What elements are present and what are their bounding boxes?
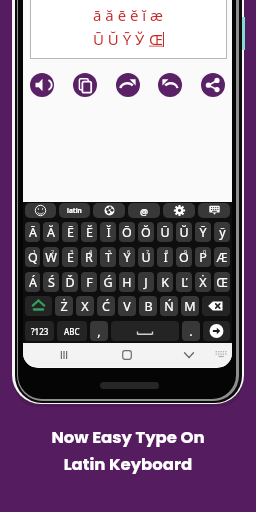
button[interactable]: E (62, 247, 78, 267)
button[interactable]: Ď (62, 272, 78, 292)
button[interactable]: Ŭ (176, 222, 192, 242)
button[interactable]: Speak (30, 73, 54, 97)
button[interactable]: Ĕ (81, 222, 97, 242)
button[interactable]: R (81, 247, 97, 267)
button[interactable]: Ŏ (138, 222, 154, 242)
staticText: @ (140, 205, 149, 217)
button[interactable]: Ū (157, 222, 173, 242)
staticText: ў (219, 224, 226, 241)
button[interactable]: Ō (119, 222, 135, 242)
staticText: 6 (127, 248, 131, 255)
staticText: 8 (165, 248, 169, 255)
button[interactable]: ABC (57, 321, 87, 341)
button[interactable]: Copy (73, 73, 97, 97)
button[interactable]: X (76, 296, 94, 316)
button[interactable]: K (157, 272, 173, 292)
button[interactable]: Ẋ (195, 272, 211, 292)
staticText: , (97, 323, 101, 340)
button[interactable]: latin (59, 203, 90, 218)
staticText: Ś (48, 274, 55, 291)
button[interactable]: J (138, 272, 154, 292)
button[interactable]: Redo (116, 73, 140, 97)
button[interactable]: B (139, 296, 157, 316)
staticText: E (67, 249, 74, 266)
staticText: Ō (122, 224, 132, 241)
button[interactable]: Ľ (176, 272, 192, 292)
staticText: Ǵ (103, 274, 113, 291)
button[interactable]: Keyboard option (93, 203, 125, 218)
button[interactable]: Ă (43, 222, 59, 242)
button[interactable]: Æ (214, 247, 230, 267)
button[interactable]: Enter (203, 321, 230, 341)
staticText: ā ă ē ĕ ĭ æ (93, 5, 164, 25)
staticText: Now Easy Type On (0, 426, 256, 449)
staticText: Ā (29, 224, 37, 241)
staticText: Æ (216, 249, 228, 266)
staticText: R (85, 249, 93, 266)
staticText: P (199, 249, 207, 266)
staticText: O (179, 249, 189, 266)
staticText: I (163, 249, 168, 266)
staticText: U (141, 249, 151, 266)
button[interactable]: ў (214, 222, 230, 242)
staticText: Ŏ (141, 224, 151, 241)
button[interactable]: Ȳ (195, 222, 211, 242)
staticText: K (161, 274, 169, 291)
button[interactable]: Ǵ (100, 272, 116, 292)
button[interactable]: T (100, 247, 116, 267)
staticText: 5 (108, 248, 112, 255)
button[interactable]: Undo (158, 73, 182, 97)
button[interactable]: V (118, 296, 136, 316)
button[interactable]: Y (119, 247, 135, 267)
staticText: Y (123, 249, 131, 266)
button[interactable]: Ś (43, 272, 59, 292)
staticText: Ū (160, 224, 170, 241)
staticText: V (123, 298, 131, 315)
staticText: Ľ (181, 274, 188, 291)
button[interactable]: Q (25, 247, 40, 267)
staticText: Œ (149, 29, 163, 49)
button[interactable]: Ż (55, 296, 73, 316)
button[interactable]: Ĭ (100, 222, 116, 242)
button[interactable]: Backspace (202, 296, 230, 316)
button[interactable]: Keyboard option (25, 203, 56, 218)
button[interactable]: M (181, 296, 199, 316)
button[interactable]: Space (111, 321, 179, 341)
button[interactable]: , (90, 321, 108, 341)
button[interactable]: Keyboard option (163, 203, 195, 218)
button[interactable]: H (119, 272, 135, 292)
button[interactable]: . (182, 321, 200, 341)
button[interactable]: Á (25, 272, 40, 292)
staticText: Ẋ (199, 274, 207, 291)
staticText: ?123 (31, 326, 49, 337)
staticText: 0 (203, 248, 207, 255)
button[interactable]: Ć (97, 296, 115, 316)
button[interactable]: Keyboard option (198, 203, 230, 218)
button[interactable]: Ń (160, 296, 178, 316)
staticText: X (81, 298, 89, 315)
button[interactable]: W (43, 247, 59, 267)
button[interactable]: P (195, 247, 211, 267)
button[interactable]: Shift (25, 296, 52, 316)
staticText: Ď (65, 274, 75, 291)
button[interactable]: U (138, 247, 154, 267)
staticText: 7 (146, 248, 150, 255)
button[interactable]: ā ă ē ĕ ĭ æ (30, 0, 227, 59)
staticText: 3 (70, 248, 74, 255)
staticText: Œ (216, 274, 228, 291)
button[interactable]: O (176, 247, 192, 267)
staticText: Ŭ (179, 224, 189, 241)
button[interactable]: Share (201, 73, 225, 97)
button[interactable]: Ā (25, 222, 40, 242)
button[interactable]: I (157, 247, 173, 267)
staticText: W (45, 249, 57, 266)
staticText: Ū Ŭ Ȳ Ў (93, 29, 149, 49)
button[interactable]: F (81, 272, 97, 292)
staticText: J (144, 274, 148, 291)
staticText: latin (67, 206, 82, 215)
button[interactable]: Œ (214, 272, 230, 292)
button[interactable]: ?123 (25, 321, 54, 341)
button[interactable]: Ē (62, 222, 78, 242)
button[interactable]: @ (128, 203, 160, 218)
staticText: Ż (60, 298, 68, 315)
